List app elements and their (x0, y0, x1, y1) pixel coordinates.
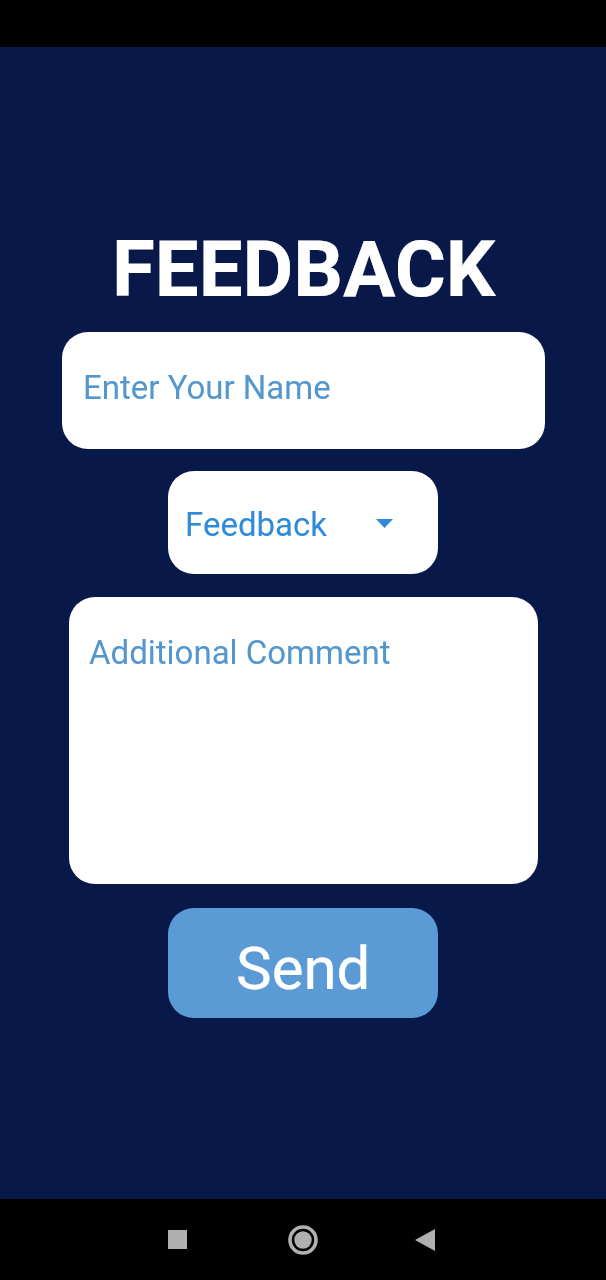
button[interactable]: Feedback (168, 471, 438, 574)
staticText: FEEDBACK (112, 224, 496, 315)
staticText: Enter Your Name (83, 368, 331, 407)
staticText: Feedback (185, 505, 327, 544)
button[interactable]: Additional Comment (69, 597, 538, 884)
staticText: Additional Comment (89, 633, 391, 672)
staticText: Send (236, 933, 371, 1003)
button[interactable]: Back (365, 1199, 488, 1280)
button[interactable]: Home (239, 1199, 365, 1280)
button[interactable]: Send (168, 908, 438, 1018)
button[interactable]: Enter Your Name (62, 332, 545, 449)
button[interactable]: Recent apps (116, 1199, 239, 1280)
